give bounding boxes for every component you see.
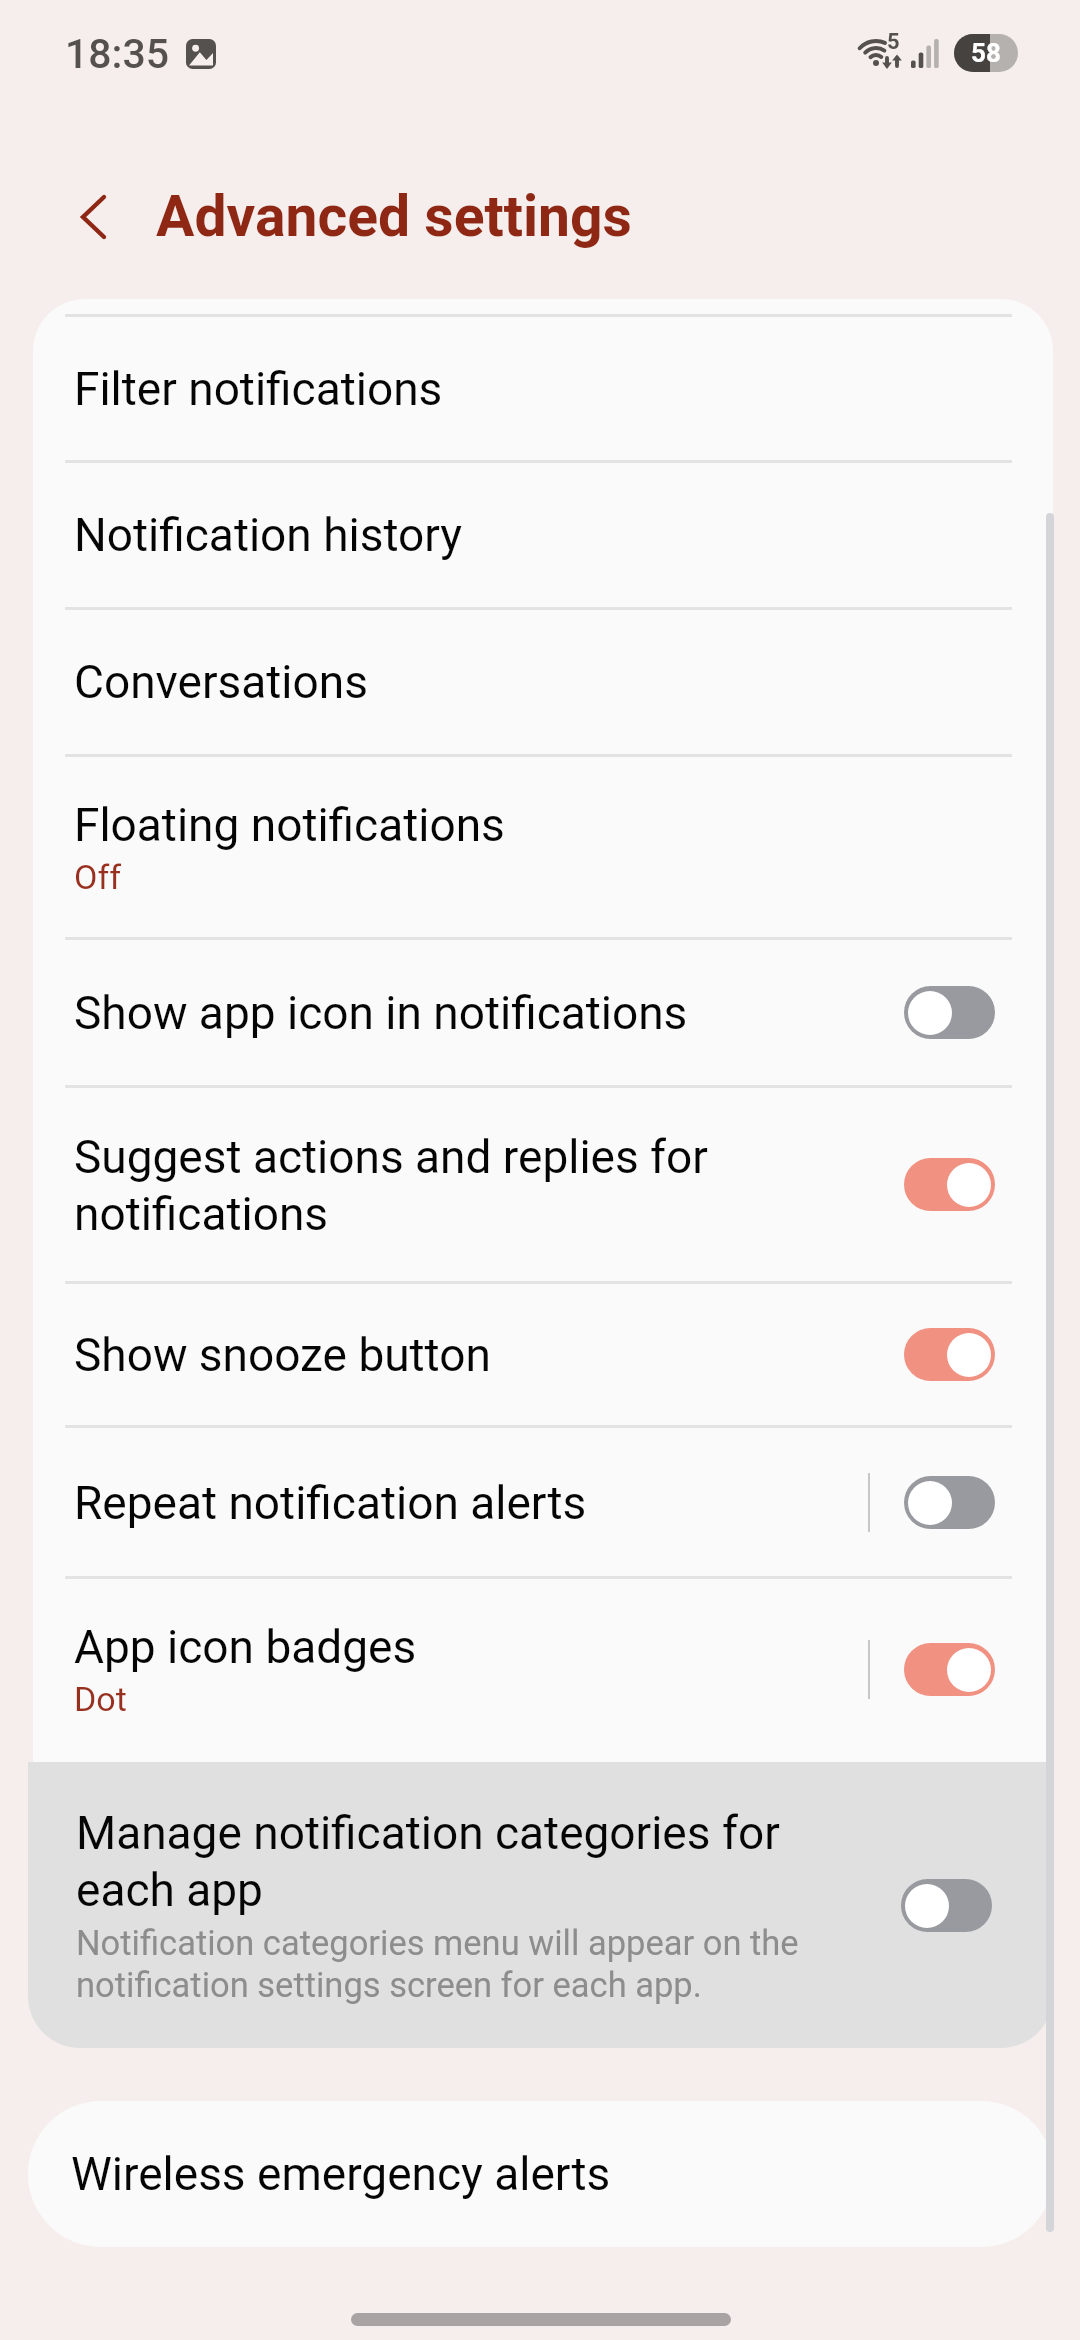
staticText: Advanced settings <box>156 183 632 250</box>
button[interactable]: Wireless emergency alerts <box>28 2101 1054 2247</box>
staticText: Notification history <box>74 508 463 562</box>
staticText: Dot <box>74 1679 127 1719</box>
button[interactable]: Switch on <box>904 1158 995 1211</box>
button[interactable]: Filter notifications <box>33 317 1053 460</box>
staticText: Filter notifications <box>74 362 443 416</box>
button[interactable]: Show app icon in notifications <box>33 940 1053 1085</box>
staticText: 58 <box>971 38 1001 68</box>
staticText: Repeat notification alerts <box>74 1474 587 1531</box>
button[interactable]: Switch on <box>904 1643 995 1696</box>
staticText: 18:35 <box>65 30 170 78</box>
button[interactable]: Switch off <box>904 986 995 1039</box>
staticText: Show app icon in notifications <box>74 984 688 1041</box>
staticText: Off <box>74 857 122 897</box>
staticText: 5 <box>887 29 900 55</box>
button[interactable]: Manage notification categories for each … <box>28 1762 1053 2048</box>
staticText: Show snooze button <box>74 1326 491 1383</box>
button[interactable]: Navigate up <box>56 178 134 256</box>
staticText: Suggest actions and replies for notifica… <box>74 1128 880 1242</box>
staticText: Conversations <box>74 655 368 709</box>
button[interactable]: Conversations <box>33 610 1053 754</box>
staticText: Notification categories menu will appear… <box>76 1922 799 2006</box>
button[interactable]: Switch on <box>904 1328 995 1381</box>
staticText: Manage notification categories for each … <box>76 1804 780 1918</box>
staticText: Floating notifications <box>74 798 505 852</box>
staticText: App icon badges <box>74 1620 417 1674</box>
button[interactable]: App icon badges <box>33 1579 1053 1760</box>
button[interactable]: Repeat notification alerts <box>33 1428 1053 1576</box>
button[interactable]: Show snooze button <box>33 1284 1053 1425</box>
staticText: Wireless emergency alerts <box>71 2147 611 2201</box>
button[interactable]: Floating notifications <box>33 757 1053 937</box>
button[interactable]: Notification history <box>33 463 1053 607</box>
button[interactable]: Switch off <box>901 1879 992 1932</box>
button[interactable]: Switch off <box>904 1476 995 1529</box>
button[interactable]: Suggest actions and replies for notifica… <box>33 1088 1053 1281</box>
